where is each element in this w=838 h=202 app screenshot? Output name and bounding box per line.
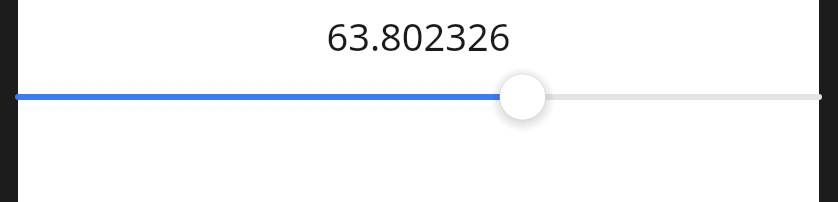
button[interactable]: Value slider [18,72,819,168]
staticText: 63.802326 [326,10,511,62]
